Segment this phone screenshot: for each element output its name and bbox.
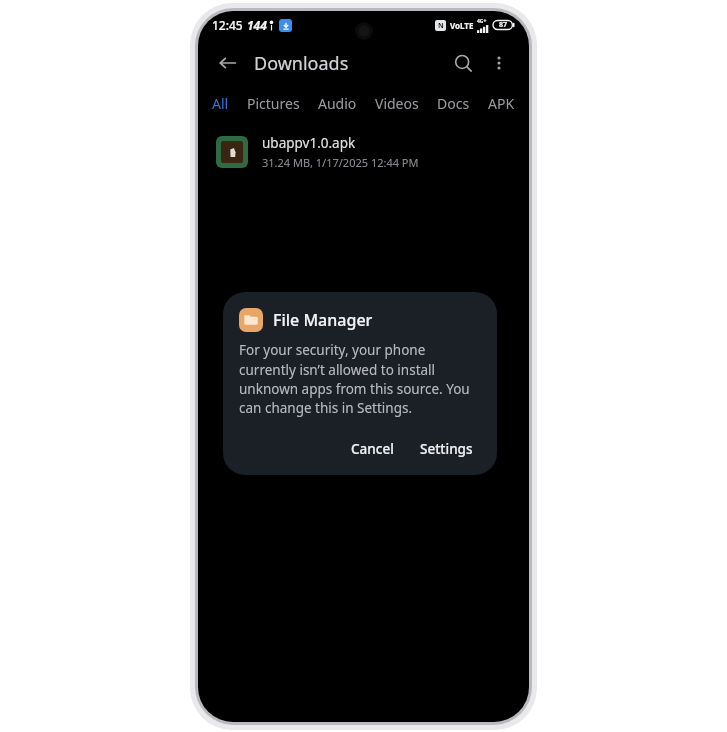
staticText: File Manager [273, 309, 373, 331]
button[interactable]: Back [210, 45, 246, 81]
staticText: Docs [437, 94, 470, 113]
button[interactable]: Audio [318, 94, 357, 113]
staticText: 4G+ [477, 18, 487, 25]
staticText: Cancel [351, 440, 394, 458]
staticText: For your security, your phone currently … [239, 341, 481, 417]
button[interactable]: Settings [412, 435, 481, 463]
staticText: All [212, 94, 229, 113]
staticText: ubappv1.0.apk [262, 134, 356, 152]
staticText: 87 [499, 20, 508, 30]
button[interactable]: More options [481, 45, 517, 81]
staticText: 144 [247, 17, 267, 33]
staticText: Settings [420, 440, 473, 458]
staticText: Downloads [254, 51, 349, 76]
staticText: Pictures [247, 94, 300, 113]
button[interactable]: Cancel [343, 435, 402, 463]
staticText: Audio [318, 94, 357, 113]
button[interactable]: Search [445, 45, 481, 81]
staticText: VoLTE [450, 20, 474, 31]
button[interactable]: ubappv1.0.apk [198, 127, 529, 177]
button[interactable]: APK [488, 94, 515, 113]
button[interactable]: Videos [375, 94, 419, 113]
staticText: 31.24 MB, 1/17/2025 12:44 PM [262, 155, 419, 170]
button[interactable]: All [212, 94, 229, 113]
button[interactable]: Pictures [247, 94, 300, 113]
staticText: APK [488, 94, 515, 113]
staticText: 12:45 [212, 17, 243, 33]
staticText: N [438, 21, 444, 31]
staticText: Videos [375, 94, 419, 113]
button[interactable]: Docs [437, 94, 470, 113]
